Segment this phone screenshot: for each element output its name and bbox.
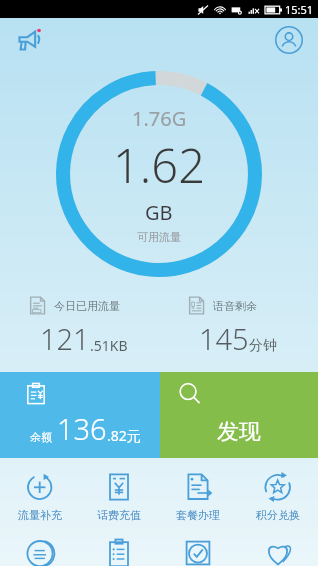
button[interactable]: 套餐办理 xyxy=(158,468,238,526)
staticText: 1.62 xyxy=(113,133,205,197)
button[interactable]: 今日已用流量 xyxy=(0,296,159,358)
button[interactable]: Menu item xyxy=(238,534,318,566)
button[interactable]: Menu item xyxy=(158,534,238,566)
staticText: GB xyxy=(145,199,173,226)
button[interactable]: Menu item xyxy=(79,534,158,566)
button[interactable]: Announcements xyxy=(12,23,46,57)
staticText: 语音剩余 xyxy=(213,299,257,313)
staticText: 分钟 xyxy=(249,337,277,355)
staticText: .51KB xyxy=(90,336,128,355)
staticText: 121 xyxy=(40,319,90,358)
staticText: 15:51 xyxy=(285,2,314,17)
button[interactable]: 积分兑换 xyxy=(238,468,318,526)
staticText: 136 xyxy=(57,409,107,448)
button[interactable]: 发现 xyxy=(160,372,318,458)
button[interactable]: 流量补充 xyxy=(0,468,79,526)
button[interactable]: Profile xyxy=(272,23,306,57)
staticText: 余额 xyxy=(30,430,52,444)
staticText: .82元 xyxy=(107,426,141,445)
staticText: 流量补充 xyxy=(18,508,62,522)
staticText: 今日已用流量 xyxy=(54,299,120,313)
button[interactable]: 话费充值 xyxy=(79,468,158,526)
staticText: 套餐办理 xyxy=(176,508,220,522)
staticText: 积分兑换 xyxy=(256,508,300,522)
button[interactable]: 语音剩余 xyxy=(159,296,318,358)
staticText: 发现 xyxy=(217,418,261,446)
staticText: 话费充值 xyxy=(97,508,141,522)
staticText: 1.76G xyxy=(132,105,187,132)
staticText: 可用流量 xyxy=(137,230,181,244)
button[interactable]: Menu item xyxy=(0,534,79,566)
button[interactable]: 余额 xyxy=(0,372,160,458)
staticText: 145 xyxy=(199,319,249,358)
